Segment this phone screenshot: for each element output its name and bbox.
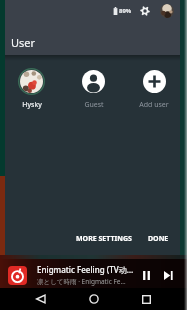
button[interactable]: Guest <box>76 66 111 112</box>
staticText: Hysky <box>22 100 42 110</box>
button[interactable]: Pause <box>138 267 154 283</box>
staticText: 89% <box>119 7 132 15</box>
button[interactable]: Next track <box>160 267 176 283</box>
button[interactable]: Back <box>30 288 52 310</box>
staticText: MORE SETTINGS <box>76 234 132 244</box>
button[interactable]: Settings <box>139 5 151 17</box>
button[interactable]: Home <box>83 288 105 310</box>
staticText: 凛として時雨 · Enigmatic Fe… <box>37 277 126 286</box>
staticText: Enigmatic Feeling (TV动… <box>37 264 134 275</box>
staticText: Guest <box>84 100 104 110</box>
button[interactable]: Hysky <box>14 66 49 112</box>
button[interactable]: DONE <box>143 229 174 249</box>
button[interactable]: Add user <box>135 66 173 112</box>
staticText: DONE <box>148 234 169 244</box>
button[interactable]: Profile <box>160 4 174 18</box>
button[interactable]: MORE SETTINGS <box>71 229 137 249</box>
button[interactable]: Recent apps <box>135 288 157 310</box>
staticText: Add user <box>139 100 169 110</box>
staticText: User <box>11 35 36 50</box>
